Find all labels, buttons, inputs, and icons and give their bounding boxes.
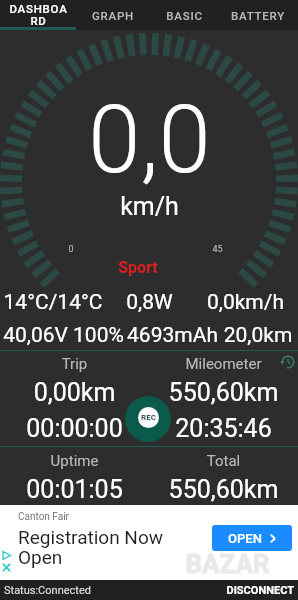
staticText: REC (141, 413, 156, 422)
button[interactable]: DASHBOA RD (0, 0, 76, 30)
button[interactable]: DISCONNECT (226, 584, 294, 597)
staticText: Total (149, 452, 298, 470)
staticText: GRAPH (92, 9, 134, 22)
staticText: 4693mAh (127, 323, 218, 348)
staticText: 0 (68, 244, 74, 255)
staticText: 00:00:00 (0, 414, 149, 443)
staticText: 0,8W (106, 290, 193, 315)
staticText: Registration Now (18, 526, 164, 548)
button[interactable]: OPEN (212, 525, 292, 551)
staticText: DISCONNECT (226, 584, 294, 597)
button[interactable]: BASIC (150, 0, 218, 30)
staticText: BASIC (166, 9, 203, 22)
staticText: 40,06V 100% (0, 323, 127, 348)
staticText: 20,0km (218, 323, 298, 348)
staticText: Uptime (0, 452, 149, 470)
staticText: 550,60km (149, 378, 298, 407)
staticText: Trip (0, 355, 149, 373)
staticText: BAZAR (185, 549, 270, 579)
staticText: 0,0 (88, 85, 211, 195)
staticText: 14°C/14°C (0, 290, 106, 315)
button[interactable]: Record trip (125, 396, 171, 442)
staticText: 550,60km (149, 475, 298, 504)
staticText: OPEN (228, 531, 262, 546)
staticText: Mileometer (149, 355, 298, 373)
button[interactable]: Reset trip (276, 350, 298, 374)
button[interactable]: GRAPH (76, 0, 150, 30)
staticText: BATTERY (231, 9, 285, 22)
staticText: km/h (120, 192, 179, 221)
staticText: 20:35:46 (149, 414, 298, 443)
staticText: Status:Connected (4, 584, 91, 597)
button[interactable]: BATTERY (218, 0, 298, 30)
staticText: Canton Fair (18, 511, 69, 523)
staticText: Open (18, 546, 63, 568)
staticText: 0,0km/h (193, 290, 298, 315)
staticText: DASHBOA RD (9, 2, 68, 28)
staticText: 0,00km (0, 378, 149, 407)
staticText: Sport (118, 258, 158, 277)
staticText: 45 (212, 244, 223, 255)
staticText: 00:01:05 (0, 475, 149, 504)
